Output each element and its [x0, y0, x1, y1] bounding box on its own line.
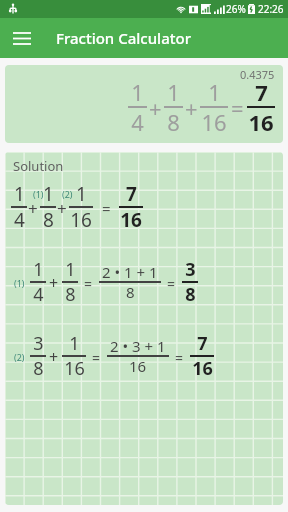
staticText: 7 [255, 77, 268, 107]
staticText: 1 [167, 77, 180, 107]
staticText: = [231, 93, 244, 123]
staticText: 1 [76, 181, 87, 207]
staticText: 3 [185, 257, 196, 282]
staticText: 22:26 [258, 2, 284, 16]
staticText: 4 [33, 282, 44, 307]
staticText: = [175, 348, 184, 367]
staticText: 4 [131, 107, 144, 137]
staticText: = [167, 274, 176, 293]
staticText: 16 [201, 107, 227, 137]
staticText: 4 [14, 207, 25, 233]
staticText: = [102, 198, 111, 218]
staticText: (1) [33, 188, 44, 200]
staticText: 16 [70, 207, 92, 233]
staticText: 8 [185, 282, 196, 307]
staticText: + [57, 197, 67, 220]
staticText: 16 [64, 356, 85, 381]
staticText: (2) [62, 188, 73, 200]
staticText: 8 [167, 107, 180, 137]
button[interactable]: Open navigation menu [8, 24, 36, 52]
staticText: (1) [14, 277, 25, 289]
staticText: 7 [126, 181, 137, 207]
staticText: + [28, 197, 38, 220]
staticText: 1 [65, 257, 76, 282]
staticText: 3 [33, 331, 44, 356]
staticText: Solution [13, 157, 64, 175]
staticText: 8 [43, 207, 54, 233]
staticText: = [92, 348, 101, 367]
staticText: 0.4375 [240, 67, 275, 82]
staticText: 16 [129, 356, 147, 376]
staticText: 8 [126, 282, 135, 302]
staticText: + [185, 93, 198, 123]
staticText: Fraction Calculator [56, 28, 191, 48]
staticText: + [49, 346, 59, 368]
staticText: + [149, 93, 162, 123]
staticText: 7 [197, 331, 208, 356]
staticText: 16 [192, 356, 213, 381]
staticText: 1 [69, 331, 80, 356]
staticText: 1 [33, 257, 44, 282]
staticText: 16 [120, 207, 142, 233]
staticText: 1 [131, 77, 144, 107]
staticText: 16 [248, 107, 274, 137]
staticText: (2) [14, 351, 25, 363]
staticText: 2 • 3 + 1 [110, 336, 166, 356]
staticText: + [49, 272, 59, 294]
staticText: 26% [226, 2, 246, 16]
staticText: = [84, 274, 93, 293]
staticText: 1 [208, 77, 221, 107]
staticText: 1 [43, 181, 54, 207]
staticText: 8 [65, 282, 76, 307]
staticText: 8 [33, 356, 44, 381]
button[interactable]: 0.4375 [5, 65, 283, 143]
staticText: 1 [14, 181, 25, 207]
staticText: 2 • 1 + 1 [102, 262, 158, 282]
